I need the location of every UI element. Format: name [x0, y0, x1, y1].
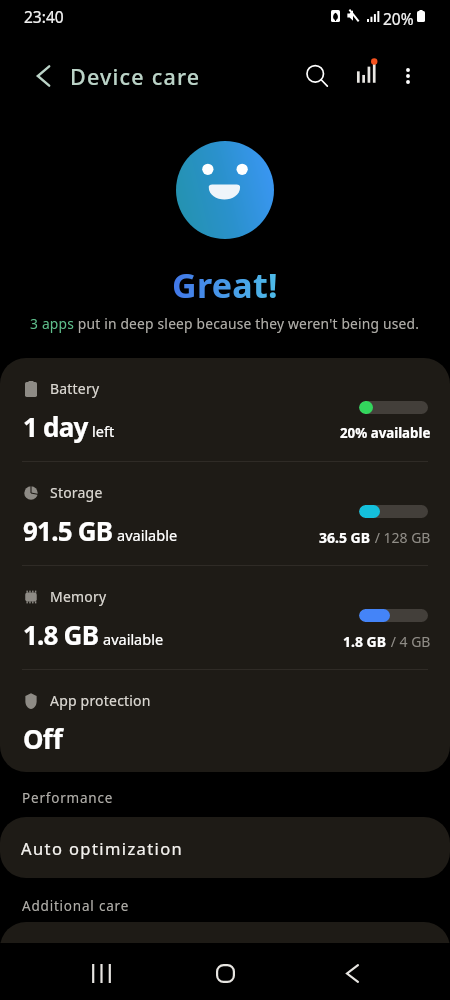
staticText: 1.8 GB	[23, 617, 99, 652]
staticText: available	[103, 629, 164, 649]
button[interactable]: Home	[197, 945, 253, 1000]
staticText: 36.5 GB	[319, 528, 371, 547]
staticText: available	[117, 525, 178, 545]
staticText: Device care	[70, 62, 201, 91]
button[interactable]	[0, 922, 450, 948]
staticText: App protection	[50, 691, 151, 710]
staticText: Storage	[50, 483, 103, 502]
button[interactable]: Memory	[0, 566, 450, 669]
button[interactable]: Recent apps	[73, 945, 129, 1000]
staticText: 20%	[383, 8, 414, 29]
button[interactable]: Storage	[0, 462, 450, 565]
staticText: 91.5 GB	[23, 513, 113, 548]
button[interactable]: Back	[324, 945, 380, 1000]
staticText: 1.8 GB	[343, 632, 387, 651]
staticText: / 4 GB	[387, 632, 431, 651]
button[interactable]: App protection	[0, 670, 450, 772]
staticText: Additional care	[22, 897, 130, 915]
staticText: put in deep sleep because they weren't b…	[74, 314, 420, 333]
staticText: 3 apps	[30, 314, 74, 333]
staticText: 23:40	[24, 6, 64, 27]
button[interactable]: Auto optimization	[0, 817, 450, 878]
staticText: Auto optimization	[21, 837, 184, 859]
staticText: left	[92, 421, 115, 441]
staticText: / 128 GB	[371, 528, 431, 547]
staticText: Great!	[0, 262, 450, 308]
button[interactable]: More options	[385, 53, 431, 99]
staticText: Off	[23, 721, 63, 756]
staticText: 20% available	[340, 424, 431, 442]
staticText: 1 day	[23, 409, 88, 444]
button[interactable]: Search	[294, 53, 340, 99]
staticText: Performance	[22, 789, 114, 807]
staticText: Memory	[50, 587, 107, 606]
button[interactable]: Battery	[0, 358, 450, 461]
button[interactable]: Navigate up	[15, 48, 71, 104]
staticText: Battery	[50, 379, 100, 398]
button[interactable]: Usage statistics	[341, 53, 387, 99]
